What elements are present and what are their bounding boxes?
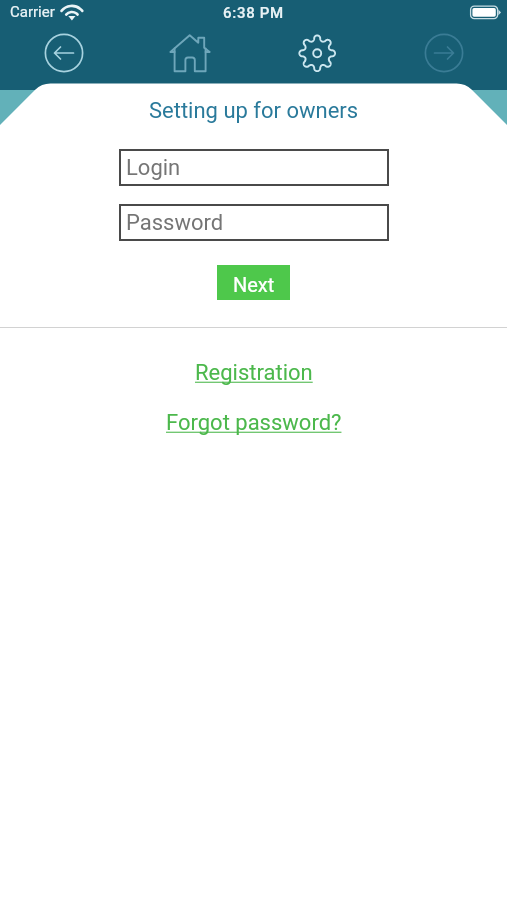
button[interactable]: Settings bbox=[296, 32, 339, 75]
staticText: Carrier bbox=[10, 3, 55, 21]
button[interactable]: Back bbox=[42, 31, 86, 75]
staticText: Registration bbox=[195, 360, 313, 386]
button[interactable]: Login bbox=[119, 149, 389, 186]
staticText: Password bbox=[126, 210, 224, 236]
staticText: Next bbox=[233, 273, 275, 296]
staticText: Login bbox=[126, 155, 181, 181]
staticText: Forgot password? bbox=[166, 410, 342, 436]
staticText: Setting up for owners bbox=[149, 98, 359, 124]
staticText: 6:38 PM bbox=[223, 4, 284, 22]
button[interactable]: Forgot password? bbox=[166, 410, 342, 436]
button[interactable]: Next bbox=[217, 265, 290, 300]
button[interactable]: Registration bbox=[195, 360, 313, 386]
button[interactable]: Forward bbox=[422, 31, 466, 75]
button[interactable]: Password bbox=[119, 204, 389, 241]
button[interactable]: Home bbox=[167, 31, 213, 75]
